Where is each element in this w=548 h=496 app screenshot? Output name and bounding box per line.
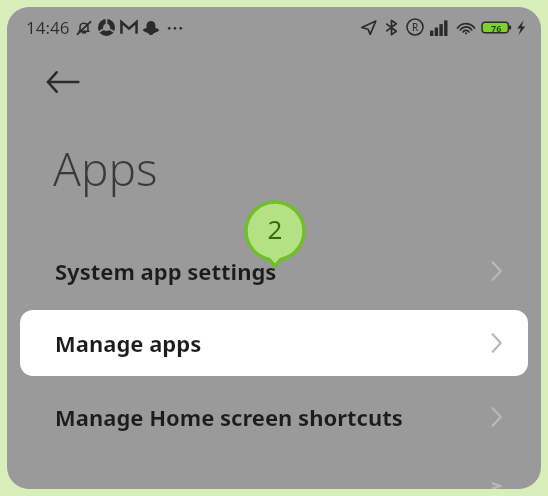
staticText: 76 (491, 22, 502, 34)
staticText: 14:46 (26, 16, 70, 39)
button[interactable]: Manage apps (20, 310, 528, 376)
staticText: Manage Home screen shortcuts (55, 402, 403, 432)
staticText: R (412, 20, 419, 34)
staticText: 2 (260, 211, 290, 246)
staticText: Manage apps (55, 328, 202, 358)
staticText: Apps (53, 137, 158, 200)
button[interactable]: Manage Home screen shortcuts (7, 384, 541, 450)
button[interactable]: System app settings (7, 238, 541, 304)
button[interactable]: Uninstalled system apps (7, 483, 541, 489)
button[interactable]: Back (41, 60, 85, 104)
staticText: System app settings (55, 256, 277, 286)
